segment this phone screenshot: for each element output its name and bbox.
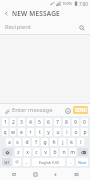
button[interactable]: s [14,138,21,146]
button[interactable]: Symbols [2,158,11,166]
button[interactable]: e [18,128,25,136]
button[interactable]: English (US) [32,158,65,166]
staticText: n [62,149,66,156]
staticText: ☺ [15,160,19,164]
staticText: e [20,129,23,136]
button[interactable]: Recipient [0,20,90,34]
button[interactable]: 6 [45,118,52,126]
staticText: . [70,159,72,166]
button[interactable]: u [54,128,61,136]
button[interactable]: y [45,128,52,136]
staticText: 6 [47,119,50,126]
staticText: k [70,139,73,146]
button[interactable]: l [77,138,84,146]
staticText: 7:00 [79,1,88,7]
button[interactable]: b [51,148,58,156]
staticText: v [44,149,47,156]
staticText: s [16,139,19,146]
staticText: l [80,139,82,146]
button[interactable]: . [67,158,74,166]
staticText: 4 [29,119,32,126]
button[interactable]: 0 [81,118,88,126]
staticText: c [35,149,38,156]
staticText: d [25,139,29,146]
button[interactable]: z [15,148,22,156]
button[interactable]: Home [28,168,42,180]
staticText: j [62,139,64,146]
staticText: m [70,149,75,156]
staticText: r [29,129,32,136]
button[interactable]: f [32,138,39,146]
staticText: z [17,149,20,156]
staticText: t [39,129,41,136]
button[interactable]: 8 [63,118,70,126]
staticText: h [52,139,56,146]
button[interactable]: d [23,138,30,146]
staticText: 2 [12,119,15,126]
button[interactable]: Next [76,158,88,166]
staticText: !#1 [4,160,10,165]
button[interactable]: Hide keyboard [48,168,62,180]
button[interactable]: Screenshot [69,168,83,180]
button[interactable]: j [59,138,66,146]
button[interactable]: x [24,148,31,156]
button[interactable]: 9 [72,118,79,126]
button[interactable]: SEND [73,106,88,114]
staticText: 5 [38,119,41,126]
button[interactable]: m [69,148,76,156]
button[interactable]: k [68,138,75,146]
button[interactable]: g [41,138,48,146]
staticText: p [83,129,87,136]
staticText: b [53,149,57,156]
staticText: 3 [20,119,23,126]
button[interactable]: w [10,128,16,136]
staticText: o [74,129,78,136]
button[interactable]: , [23,158,30,166]
staticText: Next [78,160,87,165]
button[interactable]: c [33,148,40,156]
button[interactable]: 3 [18,118,25,126]
staticText: x [26,149,29,156]
staticText: w [11,129,15,136]
staticText: English (US) [39,160,59,165]
staticText: f [35,139,37,146]
button[interactable]: p [81,128,88,136]
button[interactable]: 5 [36,118,43,126]
button[interactable]: a [6,138,12,146]
staticText: 0 [83,119,86,126]
button[interactable]: 2 [10,118,16,126]
button[interactable]: Emoji [63,106,72,115]
staticText: i [66,129,68,136]
staticText: Recipient [5,23,77,31]
button[interactable]: Recent apps [7,168,21,180]
staticText: 1 [4,119,7,126]
button[interactable]: Shift [2,148,13,156]
button[interactable]: Back [0,7,12,20]
button[interactable]: n [60,148,67,156]
button[interactable]: ☺ [13,158,21,166]
button[interactable]: 7 [54,118,61,126]
staticText: SEND [75,107,87,113]
staticText: a [8,139,11,146]
button[interactable]: q [2,128,8,136]
button[interactable]: r [27,128,34,136]
staticText: 7 [56,119,59,126]
staticText: 8 [65,119,68,126]
button[interactable]: h [50,138,57,146]
staticText: y [47,129,50,136]
button[interactable]: Search contacts [77,23,86,32]
staticText: q [3,129,7,136]
staticText: u [56,129,60,136]
staticText: , [26,159,28,166]
button[interactable]: t [36,128,43,136]
button[interactable]: 4 [27,118,34,126]
button[interactable]: o [72,128,79,136]
button[interactable]: Backspace [78,148,88,156]
staticText: 100% [62,1,73,6]
button[interactable]: Attach [2,106,11,115]
staticText: g [43,139,47,146]
button[interactable]: v [42,148,49,156]
button[interactable]: i [63,128,70,136]
button[interactable]: 1 [2,118,8,126]
staticText: NEW MESSAGE [12,9,60,18]
